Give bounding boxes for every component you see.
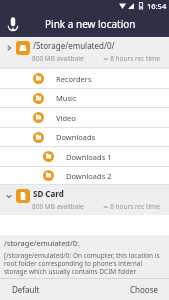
staticText: Downloads 2 xyxy=(66,171,112,181)
staticText: [/storage/emulated/0: On comupter, this … xyxy=(4,251,165,276)
staticText: ≈ 8 hours rec time xyxy=(103,54,160,63)
staticText: SD Card xyxy=(33,188,64,199)
staticText: Music xyxy=(56,93,77,103)
button[interactable]: Collapse xyxy=(0,185,169,215)
staticText: Default xyxy=(12,284,40,295)
staticText: 800 MB avalibale xyxy=(32,202,84,211)
button[interactable]: Recorders xyxy=(0,69,169,89)
button[interactable]: Downloads 2 xyxy=(0,167,169,185)
button[interactable]: Downloads xyxy=(0,128,169,147)
other: Expand xyxy=(6,44,12,52)
button[interactable]: Video xyxy=(0,108,169,128)
staticText: /storage/emulated/0: xyxy=(4,238,80,248)
button[interactable]: Default xyxy=(0,279,84,300)
staticText: 16:54 xyxy=(147,1,167,11)
staticText: 800 MB avalibale xyxy=(32,54,84,63)
button[interactable]: Downloads 1 xyxy=(0,147,169,167)
staticText: Pink a new location xyxy=(45,17,136,31)
staticText: Downloads 1 xyxy=(66,152,112,162)
staticText: /Storage/emulated/0/ xyxy=(33,40,115,51)
staticText: ≈ 8 hours rec time xyxy=(103,202,160,211)
button[interactable]: Expand xyxy=(0,37,169,69)
staticText: Recorders xyxy=(56,74,92,84)
staticText: Video xyxy=(56,113,76,123)
staticText: Choose xyxy=(130,284,159,295)
button[interactable]: Music xyxy=(0,89,169,108)
button[interactable]: Voice search xyxy=(0,11,26,37)
button[interactable]: Choose xyxy=(84,279,169,300)
other: Collapse xyxy=(6,192,12,200)
staticText: Downloads xyxy=(56,132,96,142)
